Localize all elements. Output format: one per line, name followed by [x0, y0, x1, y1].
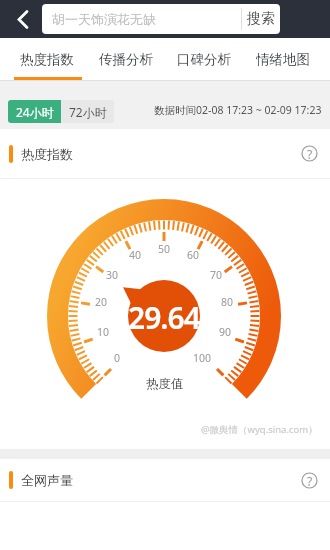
staticText: 口碑分析 [177, 51, 231, 68]
button[interactable]: 口碑分析 [177, 38, 231, 80]
staticText: 热度指数 [20, 51, 74, 68]
button[interactable] [0, 0, 40, 38]
staticText: ? [307, 473, 313, 489]
staticText: 10 [97, 325, 110, 338]
staticText: 搜索 [247, 10, 275, 28]
staticText: 情绪地图 [256, 51, 310, 68]
button[interactable]: 搜索 [242, 4, 280, 34]
button[interactable]: 72小时 [61, 100, 114, 123]
staticText: 胡一天饰演花无缺 [52, 11, 156, 27]
staticText: 全网声量 [21, 472, 73, 488]
button[interactable]: 24小时 [8, 100, 61, 123]
button[interactable]: 热度指数 [20, 38, 74, 80]
button[interactable]: ? [301, 145, 318, 162]
staticText: 72小时 [69, 104, 107, 120]
staticText: 数据时间02-08 17:23 ~ 02-09 17:23 [154, 103, 322, 117]
staticText: 80 [221, 295, 234, 308]
staticText: 0 [114, 351, 121, 364]
staticText: 100 [193, 351, 212, 364]
staticText: 40 [129, 248, 142, 261]
staticText: ? [307, 146, 313, 162]
staticText: 传播分析 [99, 51, 153, 68]
staticText: 60 [187, 248, 200, 261]
staticText: 24小时 [16, 104, 54, 120]
button[interactable]: ? [301, 472, 318, 489]
staticText: 29.64 [128, 297, 200, 335]
staticText: 70 [210, 268, 223, 281]
button[interactable]: 胡一天饰演花无缺 [42, 4, 280, 34]
staticText: 热度指数 [21, 146, 73, 162]
button[interactable]: 情绪地图 [256, 38, 310, 80]
staticText: 90 [219, 325, 232, 338]
staticText: 50 [158, 242, 171, 255]
staticText: 热度值 [146, 376, 184, 392]
staticText: @微舆情（wyq.sina.com） [201, 423, 318, 436]
staticText: 20 [95, 295, 108, 308]
button[interactable]: 传播分析 [99, 38, 153, 80]
staticText: 30 [106, 268, 119, 281]
